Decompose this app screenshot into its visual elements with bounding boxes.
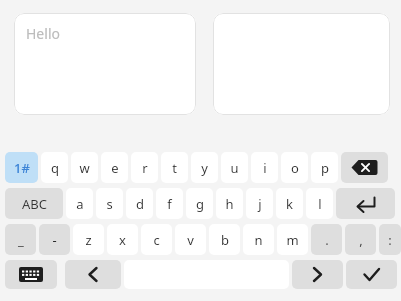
- button[interactable]: Switch keyboard: [5, 260, 57, 289]
- staticText: h: [225, 195, 234, 213]
- staticText: o: [291, 159, 299, 177]
- button[interactable]: [213, 13, 390, 115]
- staticText: w: [79, 159, 90, 177]
- button[interactable]: v: [175, 224, 206, 255]
- staticText: l: [318, 195, 322, 213]
- staticText: ,: [359, 231, 363, 249]
- staticText: k: [286, 195, 293, 213]
- staticText: q: [51, 159, 59, 177]
- button[interactable]: k: [276, 188, 303, 219]
- staticText: v: [187, 231, 194, 249]
- button[interactable]: w: [71, 152, 98, 183]
- button[interactable]: Next: [292, 260, 343, 289]
- staticText: u: [230, 159, 239, 177]
- staticText: y: [201, 159, 208, 177]
- staticText: .: [325, 231, 329, 249]
- button[interactable]: i: [251, 152, 278, 183]
- button[interactable]: s: [96, 188, 123, 219]
- button[interactable]: l: [306, 188, 333, 219]
- button[interactable]: q: [41, 152, 68, 183]
- staticText: t: [172, 159, 177, 177]
- button[interactable]: .: [311, 224, 342, 255]
- button[interactable]: ,: [345, 224, 376, 255]
- staticText: n: [254, 231, 263, 249]
- button[interactable]: Done: [346, 260, 397, 289]
- button[interactable]: n: [243, 224, 274, 255]
- staticText: g: [196, 195, 204, 213]
- button[interactable]: -: [39, 224, 70, 255]
- button[interactable]: x: [107, 224, 138, 255]
- button[interactable]: _: [5, 224, 36, 255]
- button[interactable]: z: [73, 224, 104, 255]
- staticText: d: [136, 195, 144, 213]
- button[interactable]: y: [191, 152, 218, 183]
- staticText: i: [263, 159, 267, 177]
- staticText: -: [52, 231, 57, 249]
- button[interactable]: r: [131, 152, 158, 183]
- button[interactable]: t: [161, 152, 188, 183]
- button[interactable]: Enter: [336, 188, 395, 219]
- staticText: 1#: [14, 159, 30, 177]
- button[interactable]: 1#: [5, 152, 38, 183]
- staticText: r: [142, 159, 148, 177]
- button[interactable]: f: [156, 188, 183, 219]
- staticText: m: [286, 231, 299, 249]
- button[interactable]: d: [126, 188, 153, 219]
- staticText: :: [388, 231, 392, 249]
- staticText: z: [85, 231, 92, 249]
- button[interactable]: Previous: [65, 260, 121, 289]
- button[interactable]: m: [277, 224, 308, 255]
- staticText: b: [221, 231, 229, 249]
- staticText: f: [167, 195, 172, 213]
- staticText: _: [18, 231, 24, 249]
- staticText: ABC: [22, 195, 47, 213]
- staticText: s: [106, 195, 113, 213]
- button[interactable]: h: [216, 188, 243, 219]
- button[interactable]: o: [281, 152, 308, 183]
- button[interactable]: Backspace: [341, 152, 388, 183]
- button[interactable]: j: [246, 188, 273, 219]
- staticText: a: [76, 195, 84, 213]
- staticText: p: [321, 159, 329, 177]
- button[interactable]: Hello: [14, 13, 196, 115]
- button[interactable]: :: [379, 224, 401, 255]
- button[interactable]: p: [311, 152, 338, 183]
- button[interactable]: e: [101, 152, 128, 183]
- staticText: Hello: [26, 24, 60, 43]
- staticText: e: [111, 159, 119, 177]
- button[interactable]: u: [221, 152, 248, 183]
- staticText: c: [153, 231, 160, 249]
- button[interactable]: ABC: [5, 188, 63, 219]
- staticText: x: [119, 231, 126, 249]
- button[interactable]: c: [141, 224, 172, 255]
- staticText: j: [258, 195, 262, 213]
- button[interactable]: b: [209, 224, 240, 255]
- button[interactable]: a: [66, 188, 93, 219]
- button[interactable]: g: [186, 188, 213, 219]
